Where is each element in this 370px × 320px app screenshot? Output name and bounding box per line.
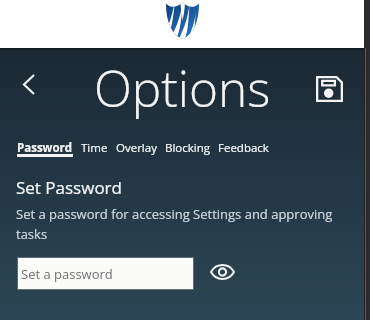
- button[interactable]: Time: [81, 140, 108, 156]
- staticText: Time: [81, 140, 108, 156]
- staticText: Password: [17, 140, 73, 156]
- staticText: Options: [94, 54, 271, 121]
- button[interactable]: Set a password: [18, 258, 193, 289]
- staticText: Set a password for accessing Settings an…: [16, 205, 338, 243]
- staticText: Set a password: [21, 265, 113, 283]
- button[interactable]: Blocking: [165, 140, 211, 156]
- button[interactable]: Password: [17, 140, 73, 159]
- button[interactable]: Overlay: [116, 140, 157, 156]
- button[interactable]: Feedback: [218, 140, 269, 156]
- button[interactable]: Back: [7, 62, 51, 106]
- staticText: Blocking: [165, 140, 211, 156]
- staticText: Feedback: [218, 140, 269, 156]
- button[interactable]: Save: [307, 67, 351, 111]
- staticText: Set Password: [16, 176, 122, 199]
- staticText: Overlay: [116, 140, 157, 156]
- button[interactable]: Show password: [200, 250, 244, 294]
